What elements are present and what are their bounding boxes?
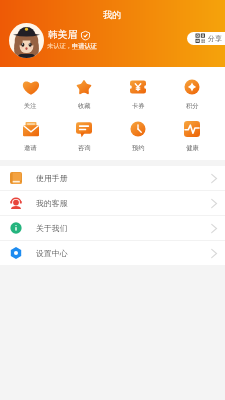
- staticText: 收藏: [78, 102, 91, 110]
- staticText: 咨询: [78, 144, 91, 152]
- button[interactable]: 使用手册: [0, 166, 225, 190]
- button[interactable]: 关于我们: [0, 216, 225, 240]
- staticText: 使用手册: [36, 173, 68, 183]
- button[interactable]: 设置中心: [0, 241, 225, 265]
- staticText: 分享: [208, 34, 222, 43]
- button[interactable]: 积分: [165, 79, 219, 110]
- staticText: 未认证，: [47, 42, 72, 50]
- button[interactable]: 申请认证: [72, 42, 97, 50]
- staticText: 预约: [132, 144, 145, 152]
- staticText: 我的: [103, 9, 122, 21]
- button[interactable]: 健康: [165, 121, 219, 152]
- staticText: 我的客服: [36, 198, 68, 208]
- button[interactable]: 收藏: [57, 79, 111, 110]
- staticText: 邀请: [24, 144, 37, 152]
- button[interactable]: 邀请: [4, 121, 57, 152]
- button[interactable]: Profile photo: [9, 23, 105, 59]
- staticText: 健康: [186, 144, 199, 152]
- button[interactable]: 卡券: [111, 79, 165, 110]
- button[interactable]: 关注: [4, 79, 57, 110]
- button[interactable]: 我的客服: [0, 191, 225, 215]
- staticText: 关注: [24, 102, 37, 110]
- staticText: 关于我们: [36, 223, 68, 233]
- staticText: 韩美眉: [48, 29, 78, 41]
- button[interactable]: 咨询: [57, 121, 111, 152]
- staticText: 卡券: [132, 102, 145, 110]
- staticText: 设置中心: [36, 248, 68, 258]
- button[interactable]: 分享: [187, 32, 225, 45]
- staticText: 积分: [186, 102, 199, 110]
- other: Profile photo: [9, 23, 44, 58]
- button[interactable]: 预约: [111, 121, 165, 152]
